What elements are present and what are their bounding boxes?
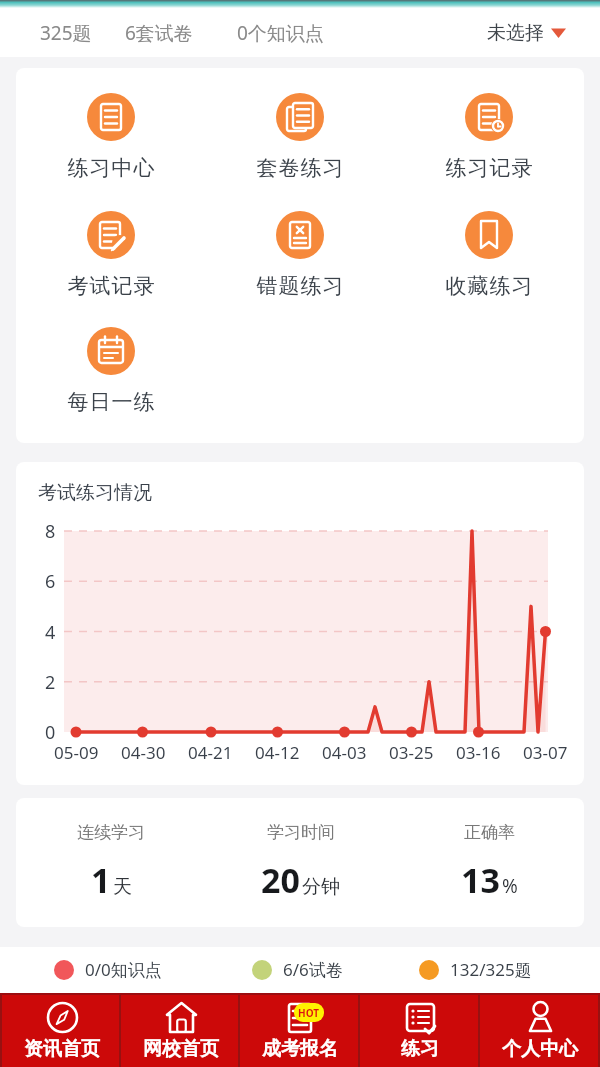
staticText: 未选择 [487,21,544,45]
staticText: 错题练习 [256,273,344,299]
staticText: 连续学习 [77,822,145,843]
button[interactable]: 错题练习 [205,211,394,327]
staticText: 4 [45,620,56,645]
staticText: 20 [261,857,300,903]
button[interactable]: 网校首页 [121,995,240,1067]
button[interactable]: 套卷练习 [205,93,394,211]
staticText: 03-25 [389,741,434,764]
button[interactable]: 未选择 [487,21,566,45]
staticText: 0个知识点 [237,20,324,46]
staticText: 分钟 [302,875,340,899]
staticText: 04-21 [188,741,233,764]
staticText: 个人中心 [502,1037,578,1061]
staticText: 04-30 [121,741,166,764]
staticText: 03-07 [523,741,568,764]
staticText: 8 [45,519,56,544]
staticText: 03-16 [456,741,501,764]
staticText: 考试记录 [67,273,155,299]
staticText: 网校首页 [143,1037,219,1061]
staticText: 6套试卷 [125,20,193,46]
staticText: 0/0知识点 [85,958,162,981]
staticText: 1 [91,857,111,903]
button[interactable]: 连续学习 [16,822,206,903]
staticText: 6 [45,569,56,594]
staticText: 练习 [401,1037,439,1061]
staticText: 学习时间 [267,822,335,843]
staticText: 正确率 [464,822,515,843]
staticText: % [502,873,518,899]
staticText: 04-03 [322,741,367,764]
button[interactable]: 练习中心 [16,93,205,211]
staticText: 2 [45,670,56,695]
staticText: 套卷练习 [256,155,344,181]
button[interactable]: 练习 [360,995,480,1067]
button[interactable]: 练习记录 [394,93,583,211]
staticText: 练习中心 [67,155,155,181]
button[interactable]: 资讯首页 [2,995,121,1067]
staticText: 天 [113,875,132,899]
button[interactable]: 每日一练 [16,327,205,443]
staticText: 132/325题 [450,958,532,981]
button[interactable]: 个人中心 [480,995,600,1067]
button[interactable]: HOT [240,995,360,1067]
staticText: 04-12 [255,741,300,764]
staticText: 收藏练习 [445,273,533,299]
staticText: HOT [298,1006,320,1020]
button[interactable]: 学习时间 [206,822,395,903]
button[interactable]: 收藏练习 [394,211,583,327]
staticText: 练习记录 [445,155,533,181]
staticText: 成考报名 [262,1037,338,1061]
staticText: 6/6试卷 [283,958,343,981]
staticText: 0 [45,720,56,745]
staticText: 325题 [40,20,92,46]
staticText: 每日一练 [67,389,155,415]
staticText: 考试练习情况 [38,481,152,505]
button[interactable]: 正确率 [395,822,584,903]
staticText: 资讯首页 [24,1037,100,1061]
button[interactable]: 考试记录 [16,211,205,327]
staticText: 13 [461,857,500,903]
staticText: 05-09 [54,741,99,764]
